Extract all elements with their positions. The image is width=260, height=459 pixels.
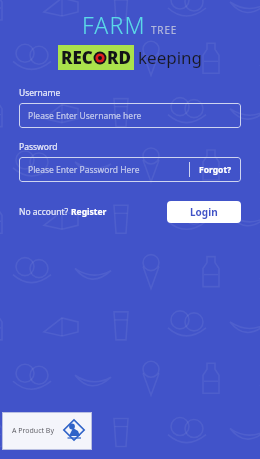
button[interactable]: No account? — [19, 202, 107, 222]
staticText: FARM — [82, 9, 146, 40]
button[interactable]: A Product By — [2, 412, 92, 450]
staticText: Username — [19, 87, 61, 99]
staticText: Forgot? — [199, 164, 232, 176]
button[interactable]: Please Enter Password Here — [19, 157, 189, 182]
staticText: Register — [71, 206, 107, 218]
button[interactable]: Forgot? — [190, 157, 241, 182]
staticText: No account? — [19, 206, 71, 218]
button[interactable]: Please Enter Username here — [19, 103, 241, 128]
staticText: Login — [190, 205, 218, 219]
staticText: Password — [19, 141, 58, 153]
staticText: Please Enter Username here — [28, 110, 142, 122]
staticText: RD — [107, 46, 131, 69]
staticText: TREE — [151, 23, 178, 37]
staticText: A Product By — [12, 426, 54, 436]
staticText: keeping — [138, 46, 203, 69]
staticText: Please Enter Password Here — [28, 164, 140, 176]
button[interactable]: Login — [167, 201, 241, 223]
staticText: REC — [61, 46, 93, 69]
